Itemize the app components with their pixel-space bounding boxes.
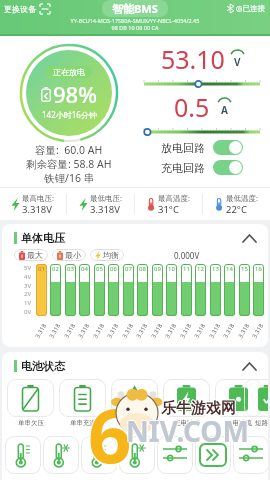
staticText: 单串欠压 bbox=[18, 419, 44, 427]
staticText: 02 bbox=[52, 265, 59, 273]
staticText: 12 bbox=[197, 265, 204, 273]
staticText: 短路保护 bbox=[255, 419, 268, 427]
button[interactable] bbox=[43, 436, 79, 474]
staticText: 6 bbox=[90, 382, 134, 480]
staticText: 更换设备 bbox=[4, 4, 36, 14]
staticText: 08 bbox=[139, 265, 146, 273]
staticText: 16 bbox=[255, 265, 262, 273]
staticText: 充电过流 bbox=[174, 419, 200, 427]
staticText: 放电回路 bbox=[161, 141, 205, 155]
staticText: ◎已连接 bbox=[236, 4, 266, 13]
staticText: NIV.COM bbox=[125, 412, 248, 450]
staticText: 09 bbox=[154, 265, 161, 273]
button[interactable]: 放电过流 bbox=[215, 379, 262, 427]
button[interactable]: 单串欠压 bbox=[7, 379, 54, 427]
staticText: 11 bbox=[183, 265, 190, 273]
staticText: 3.318 bbox=[47, 318, 64, 340]
button[interactable] bbox=[157, 436, 193, 474]
staticText: 6 bbox=[88, 381, 132, 480]
staticText: A bbox=[221, 103, 228, 117]
staticText: 0.000V bbox=[174, 250, 200, 261]
staticText: 3.318 bbox=[33, 318, 50, 340]
staticText: 3.318 bbox=[149, 318, 166, 340]
staticText: 1V bbox=[24, 299, 32, 307]
button[interactable] bbox=[195, 436, 231, 474]
button[interactable] bbox=[243, 235, 256, 242]
button[interactable]: 短路保护 bbox=[244, 379, 268, 427]
staticText: 3.318 bbox=[192, 318, 209, 340]
staticText: 07 bbox=[125, 265, 132, 273]
staticText: 最大 bbox=[27, 250, 43, 260]
staticText: 乐牛游戏网 bbox=[160, 399, 235, 418]
staticText: 充电回路 bbox=[161, 161, 205, 175]
staticText: 98% bbox=[53, 79, 97, 109]
staticText: 3.318 bbox=[250, 318, 267, 340]
staticText: 04 bbox=[81, 265, 88, 273]
staticText: 98 DB 10 06 00 CA bbox=[0, 24, 270, 31]
staticText: 03 bbox=[67, 265, 74, 273]
staticText: 最高电压: bbox=[22, 193, 55, 203]
staticText: 总压过压 bbox=[122, 419, 148, 427]
button[interactable]: 放电回路 bbox=[161, 140, 243, 155]
staticText: 智能BMS bbox=[112, 1, 158, 16]
staticText: 单串充满 bbox=[70, 419, 96, 427]
button[interactable]: ◎已连接 bbox=[227, 4, 266, 13]
staticText: YY-BCU14-MOS-17S80A-SMUX/YY-NBCL-4054/2.… bbox=[0, 17, 270, 24]
staticText: 乐牛游戏网 bbox=[161, 399, 236, 418]
staticText: NIV.COM bbox=[126, 411, 249, 449]
staticText: 3.318 bbox=[76, 318, 93, 340]
staticText: 06 bbox=[110, 265, 117, 273]
button[interactable]: 更换设备 bbox=[4, 4, 50, 14]
staticText: 6 bbox=[88, 384, 132, 480]
staticText: 10 bbox=[168, 265, 175, 273]
staticText: 容量: 60.0 AH bbox=[35, 143, 103, 157]
staticText: 3.318 bbox=[207, 318, 224, 340]
staticText: 乐牛游戏网 bbox=[161, 398, 236, 417]
staticText: NIV.COM bbox=[126, 412, 249, 450]
staticText: 铁锂/16 串 bbox=[44, 171, 95, 185]
staticText: 6 bbox=[87, 382, 131, 480]
button[interactable]: 单串充满 bbox=[59, 379, 106, 427]
staticText: V bbox=[234, 55, 241, 69]
staticText: 3.318 bbox=[91, 318, 108, 340]
staticText: 3.318V bbox=[90, 203, 120, 216]
button[interactable] bbox=[81, 436, 117, 474]
staticText: 剩余容量: 58.8 AH bbox=[26, 157, 112, 171]
staticText: 05 bbox=[96, 265, 103, 273]
button[interactable]: 最大 bbox=[19, 250, 43, 260]
button[interactable] bbox=[243, 363, 256, 370]
staticText: 0.5 bbox=[174, 90, 210, 124]
staticText: 最低电压: bbox=[90, 193, 123, 203]
button[interactable] bbox=[5, 436, 41, 474]
button[interactable]: 总压过压 bbox=[111, 379, 158, 427]
staticText: 31°C bbox=[158, 203, 179, 216]
staticText: 乐牛游戏网 bbox=[161, 400, 236, 419]
button[interactable]: 智能BMS bbox=[112, 1, 158, 16]
button[interactable]: 充电回路 bbox=[161, 160, 243, 175]
button[interactable] bbox=[119, 436, 155, 474]
button[interactable] bbox=[233, 436, 268, 474]
staticText: NIV.COM bbox=[126, 413, 249, 451]
button[interactable]: 充电过流 bbox=[163, 379, 210, 427]
staticText: 13 bbox=[212, 265, 219, 273]
staticText: 4V bbox=[24, 273, 32, 281]
staticText: 正在放电 bbox=[53, 67, 85, 77]
staticText: 电池状态 bbox=[21, 359, 65, 373]
staticText: 放电过流 bbox=[226, 419, 252, 427]
staticText: 3.318 bbox=[62, 318, 79, 340]
staticText: 3.318 bbox=[120, 318, 137, 340]
staticText: 14 bbox=[226, 265, 233, 273]
button[interactable]: 均衡 bbox=[95, 250, 119, 260]
staticText: 15 bbox=[241, 265, 248, 273]
staticText: 最小 bbox=[65, 250, 81, 260]
staticText: 最高温度: bbox=[158, 193, 191, 203]
staticText: 5V bbox=[24, 264, 32, 272]
staticText: 6 bbox=[88, 382, 132, 480]
staticText: 3.318 bbox=[105, 318, 122, 340]
staticText: 3V bbox=[24, 282, 32, 290]
button[interactable]: 最小 bbox=[57, 250, 81, 260]
staticText: 53.10 bbox=[161, 42, 225, 76]
staticText: 单体电压 bbox=[21, 231, 65, 245]
staticText: 3.318V bbox=[22, 203, 52, 216]
staticText: 3.318 bbox=[178, 318, 195, 340]
